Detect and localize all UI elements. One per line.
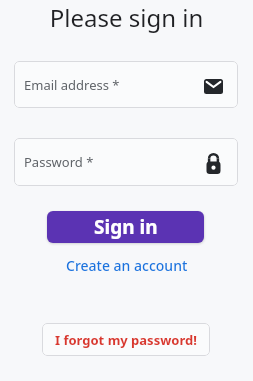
button[interactable]: I forgot my password! [42, 323, 210, 356]
staticText: Password * [24, 153, 94, 171]
button[interactable]: Password * [14, 138, 238, 186]
staticText: I forgot my password! [55, 331, 197, 349]
button[interactable]: Email address * [14, 61, 238, 108]
staticText: Please sign in [0, 1, 253, 34]
button[interactable]: Create an account [66, 256, 188, 275]
staticText: Email address * [24, 76, 120, 94]
staticText: Sign in [94, 214, 158, 240]
button[interactable]: Sign in [47, 211, 204, 243]
